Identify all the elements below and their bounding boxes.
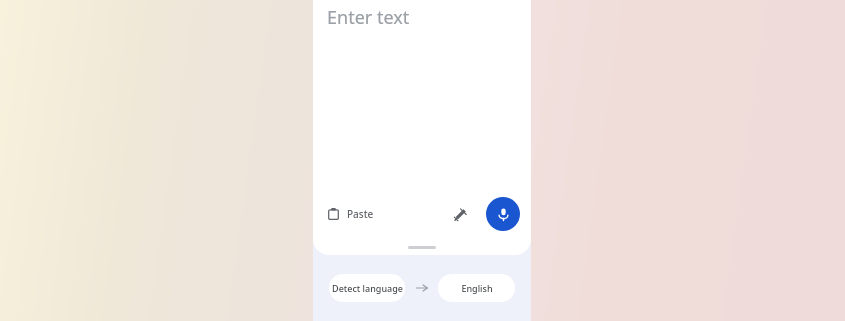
button[interactable]: Voice input [486,197,520,231]
button[interactable]: Paste [323,202,378,226]
staticText: English [461,282,493,294]
button[interactable]: Detect language [329,274,405,302]
button[interactable]: English [438,274,515,302]
button[interactable]: Handwriting input [447,201,473,227]
button[interactable]: Swap languages [405,275,438,301]
staticText: Detect language [332,282,403,294]
staticText: Paste [347,207,374,221]
staticText: Enter text [327,5,410,30]
